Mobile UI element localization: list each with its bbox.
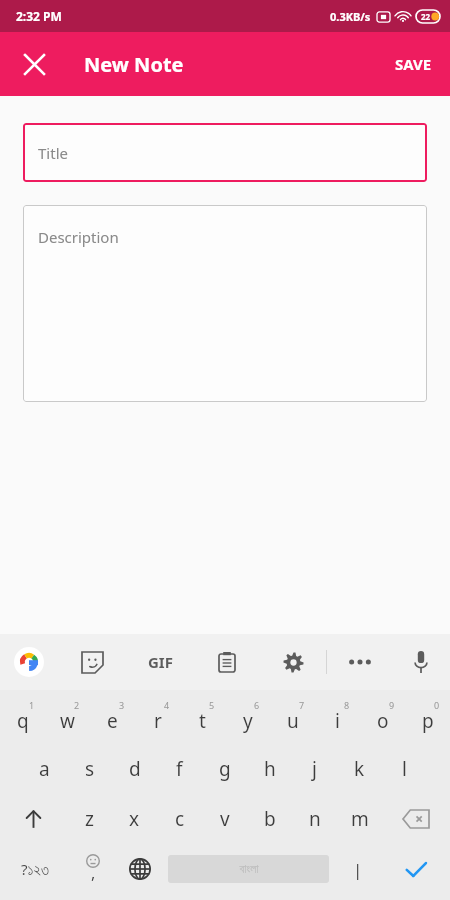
button[interactable]: l [382,744,427,794]
button[interactable]: Voice input [392,634,450,690]
button[interactable]: g [202,744,247,794]
button[interactable]: 1 [0,694,45,744]
staticText: q [17,708,29,734]
staticText: 1 [29,699,35,711]
staticText: 2:32 PM [16,8,62,24]
staticText: 0.3KB/s [330,9,371,24]
button[interactable]: f [157,744,202,794]
staticText: s [85,756,95,782]
staticText: 6 [254,699,260,711]
staticText: ?১২৩ [21,859,49,879]
button[interactable]: d [112,744,157,794]
button[interactable]: 3 [90,694,135,744]
button[interactable]: j [292,744,337,794]
staticText: 2 [74,699,80,711]
staticText: 3 [119,699,125,711]
staticText: g [219,756,231,782]
button[interactable]: 6 [225,694,270,744]
staticText: 7 [299,699,305,711]
staticText: f [176,756,183,782]
staticText: v [220,806,230,832]
staticText: o [377,708,389,734]
button[interactable]: 2 [45,694,90,744]
staticText: GIF [148,652,173,672]
button[interactable]: x [112,794,157,844]
button[interactable]: Change language [116,844,163,894]
staticText: y [243,708,253,734]
button[interactable]: n [292,794,337,844]
button[interactable]: 4 [135,694,180,744]
button[interactable]: z [67,794,112,844]
button[interactable]: c [157,794,202,844]
button[interactable]: 8 [315,694,360,744]
button[interactable]: Shift [0,794,67,844]
button[interactable]: Google [0,634,58,690]
staticText: 9 [389,699,395,711]
staticText: | [353,858,363,881]
button[interactable]: Clipboard [194,634,260,690]
staticText: Description [38,227,119,247]
button[interactable]: GIF [126,634,194,690]
staticText: l [402,756,407,782]
button[interactable]: Enter [381,844,450,894]
button[interactable]: a [22,744,67,794]
button[interactable]: Backspace [382,794,450,844]
staticText: বাংলা [239,863,259,875]
staticText: 22 [421,11,431,22]
staticText: i [335,708,340,734]
button[interactable]: ?১২৩ [0,844,69,894]
staticText: 4 [164,699,170,711]
button[interactable]: 0 [405,694,450,744]
staticText: b [264,806,276,832]
staticText: e [107,708,118,734]
button[interactable]: SAVE [377,42,450,86]
button[interactable]: b [247,794,292,844]
staticText: z [85,806,94,832]
button[interactable]: Description [23,205,427,402]
staticText: 8 [344,699,350,711]
button[interactable]: s [67,744,112,794]
staticText: x [129,806,140,832]
staticText: t [199,708,206,734]
staticText: h [264,756,276,782]
staticText: w [60,708,75,734]
staticText: n [309,806,321,832]
staticText: 0 [434,699,440,711]
button[interactable]: 5 [180,694,225,744]
button[interactable]: More [327,634,392,690]
button[interactable]: 7 [270,694,315,744]
button[interactable]: Emoji [69,844,116,894]
button[interactable]: Close [14,44,54,84]
button[interactable]: m [337,794,382,844]
staticText: u [287,708,299,734]
staticText: , [91,862,96,884]
staticText: New Note [84,51,184,78]
staticText: d [129,756,141,782]
button[interactable]: k [337,744,382,794]
button[interactable]: v [202,794,247,844]
button[interactable]: 9 [360,694,405,744]
button[interactable]: | [334,844,381,894]
staticText: k [354,756,365,782]
staticText: SAVE [395,54,432,74]
staticText: m [351,806,369,832]
staticText: p [422,708,434,734]
staticText: j [312,756,317,782]
button[interactable]: h [247,744,292,794]
button[interactable]: Stickers [58,634,126,690]
staticText: 5 [209,699,215,711]
button[interactable]: Title [23,123,427,182]
staticText: a [39,756,50,782]
staticText: c [175,806,185,832]
button[interactable]: Settings [260,634,326,690]
staticText: Title [38,143,68,163]
staticText: r [154,708,162,734]
